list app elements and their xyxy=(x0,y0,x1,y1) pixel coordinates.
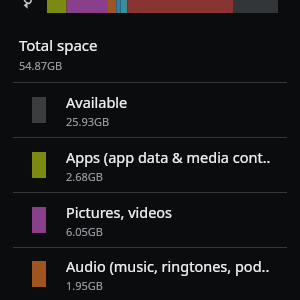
button[interactable]: Pictures, videos xyxy=(0,193,300,248)
staticText: 1.95GB xyxy=(66,278,103,293)
staticText: 2.68GB xyxy=(66,169,103,184)
button[interactable]: Audio (music, ringtones, pod.. xyxy=(0,248,300,300)
staticText: 54.87GB xyxy=(19,58,63,73)
staticText: Apps (app data & media cont.. xyxy=(66,147,271,167)
staticText: Pictures, videos xyxy=(66,202,173,222)
button[interactable]: Apps (app data & media cont.. xyxy=(0,138,300,193)
staticText: 25.93GB xyxy=(66,114,110,129)
staticText: Available xyxy=(66,92,128,112)
button[interactable]: Available xyxy=(0,83,300,138)
button[interactable]: Total space xyxy=(0,14,300,73)
other: Undo xyxy=(22,0,40,14)
staticText: 6.05GB xyxy=(66,224,103,239)
staticText: Total space xyxy=(19,35,98,55)
staticText: Audio (music, ringtones, pod.. xyxy=(66,256,270,276)
